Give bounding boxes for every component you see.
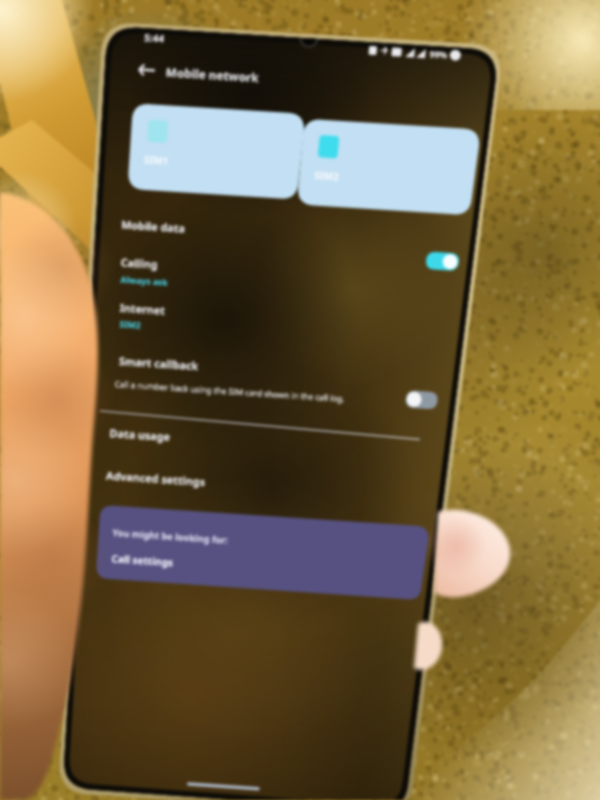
button[interactable]: Mobile network settings bbox=[0, 0, 600, 800]
